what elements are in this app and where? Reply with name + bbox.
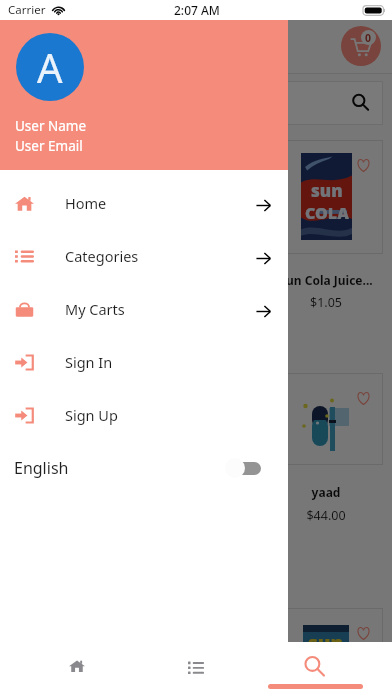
button[interactable]: sun (139, 140, 253, 254)
button[interactable]: Search (255, 642, 374, 690)
button[interactable] (9, 81, 383, 125)
staticText: User Email (15, 137, 83, 155)
staticText: My Carts (65, 299, 125, 319)
button[interactable]: Home (18, 642, 136, 690)
staticText: 0 (365, 31, 372, 45)
button[interactable]: Home (0, 176, 288, 229)
button[interactable]: sun (139, 608, 253, 696)
staticText: COLA (305, 202, 349, 224)
button[interactable]: sun (269, 140, 383, 254)
button[interactable]: sun (9, 608, 123, 696)
staticText: sun (51, 179, 83, 202)
button[interactable]: sun (269, 608, 383, 696)
staticText: 2:07 AM (174, 2, 220, 18)
staticText: $1.05 (269, 294, 383, 311)
staticText: Carrier (8, 2, 46, 18)
button[interactable]: Cart (341, 26, 381, 66)
staticText: Home (65, 193, 107, 213)
staticText: English (14, 457, 69, 479)
staticText: Categories (65, 246, 139, 266)
staticText: Sign In (65, 352, 113, 372)
button[interactable] (139, 373, 253, 465)
button[interactable]: sun (9, 140, 123, 254)
button[interactable] (9, 373, 123, 465)
staticText: $44.00 (269, 507, 383, 524)
button[interactable]: Categories (136, 642, 255, 690)
button[interactable] (269, 373, 383, 465)
staticText: User Name (15, 117, 87, 135)
staticText: COLA (45, 202, 89, 224)
staticText: A (37, 40, 63, 94)
staticText: Sun Cola Juice... (269, 272, 383, 288)
button[interactable]: Sign Up (0, 388, 288, 441)
staticText: yaad (269, 484, 383, 500)
staticText: Sign Up (65, 405, 118, 425)
button[interactable]: Sign In (0, 335, 288, 388)
staticText: $1.05 (9, 294, 123, 311)
button[interactable]: English (0, 448, 288, 488)
staticText: sun (311, 179, 343, 202)
staticText: sun (308, 630, 344, 656)
button[interactable]: My Carts (0, 282, 288, 335)
button[interactable]: Categories (0, 229, 288, 282)
